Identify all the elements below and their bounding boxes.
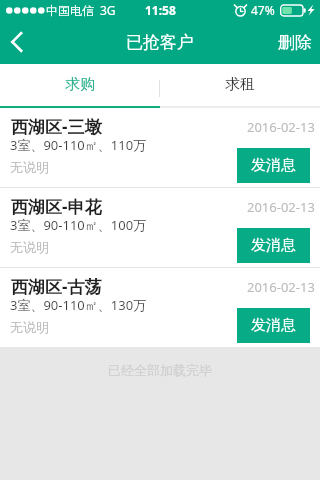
- staticText: 已经全部加载完毕: [108, 362, 212, 378]
- button[interactable]: 西湖区-古荡: [0, 268, 320, 347]
- staticText: 2016-02-13: [247, 278, 315, 296]
- staticText: 47%: [251, 2, 275, 18]
- button[interactable]: 删除: [266, 20, 320, 64]
- button[interactable]: 求购: [0, 64, 160, 108]
- button[interactable]: 发消息: [237, 148, 310, 183]
- staticText: 已抢客户: [126, 32, 194, 53]
- staticText: 西湖区-申花: [11, 195, 102, 218]
- button[interactable]: 求租: [160, 64, 320, 108]
- staticText: 发消息: [251, 236, 296, 255]
- staticText: 无说明: [10, 239, 49, 255]
- button[interactable]: 发消息: [237, 228, 310, 263]
- staticText: 3G: [100, 2, 116, 18]
- staticText: 求购: [65, 75, 95, 94]
- staticText: 中国电信: [46, 3, 94, 18]
- staticText: 2016-02-13: [247, 198, 315, 216]
- button[interactable]: 西湖区-三墩: [0, 108, 320, 187]
- staticText: 西湖区-古荡: [11, 275, 102, 298]
- staticText: 删除: [278, 32, 312, 53]
- staticText: 西湖区-三墩: [11, 115, 102, 138]
- staticText: 无说明: [10, 159, 49, 175]
- staticText: 无说明: [10, 319, 49, 335]
- staticText: 发消息: [251, 156, 296, 175]
- button[interactable]: Back: [0, 20, 30, 64]
- staticText: 求租: [225, 75, 255, 94]
- staticText: 2016-02-13: [247, 118, 315, 136]
- staticText: 3室、90-110㎡、100万: [10, 216, 147, 234]
- staticText: 3室、90-110㎡、110万: [10, 136, 147, 154]
- staticText: 11:58: [145, 2, 176, 18]
- staticText: 发消息: [251, 316, 296, 335]
- button[interactable]: 发消息: [237, 308, 310, 343]
- staticText: 3室、90-110㎡、130万: [10, 296, 147, 314]
- button[interactable]: 西湖区-申花: [0, 188, 320, 267]
